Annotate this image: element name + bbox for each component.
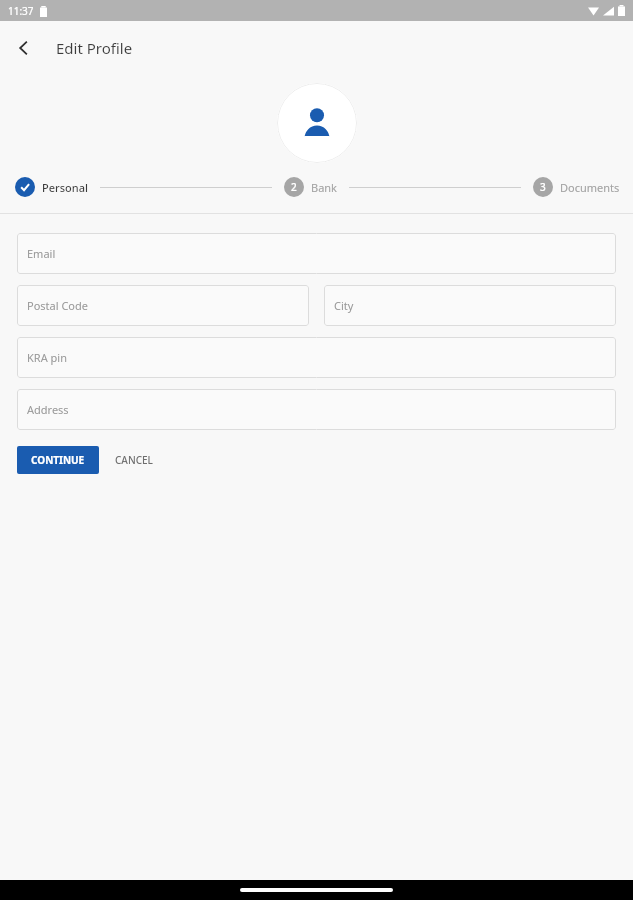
staticText: Edit Profile bbox=[56, 38, 133, 58]
button[interactable]: Address bbox=[17, 389, 616, 430]
staticText: Documents bbox=[560, 180, 620, 195]
staticText: Email bbox=[27, 246, 56, 261]
button[interactable]: Personal bbox=[15, 177, 88, 197]
staticText: City bbox=[334, 298, 354, 313]
button[interactable]: Profile photo bbox=[277, 83, 357, 163]
staticText: 11:37 bbox=[8, 4, 34, 18]
button[interactable]: Postal Code bbox=[17, 285, 309, 326]
staticText: CONTINUE bbox=[31, 453, 85, 467]
button[interactable]: Back bbox=[4, 28, 44, 68]
button[interactable]: CONTINUE bbox=[17, 446, 99, 474]
staticText: Personal bbox=[42, 180, 88, 195]
staticText: KRA pin bbox=[27, 350, 67, 365]
button[interactable]: KRA pin bbox=[17, 337, 616, 378]
button[interactable]: City bbox=[324, 285, 616, 326]
staticText: Postal Code bbox=[27, 298, 88, 313]
button[interactable]: CANCEL bbox=[99, 446, 169, 474]
staticText: Bank bbox=[311, 180, 337, 195]
button[interactable]: 2 bbox=[284, 177, 337, 197]
staticText: 2 bbox=[291, 180, 297, 194]
staticText: Address bbox=[27, 402, 69, 417]
button[interactable]: 3 bbox=[533, 177, 620, 197]
button[interactable]: Email bbox=[17, 233, 616, 274]
staticText: CANCEL bbox=[115, 453, 153, 467]
staticText: 3 bbox=[540, 180, 546, 194]
